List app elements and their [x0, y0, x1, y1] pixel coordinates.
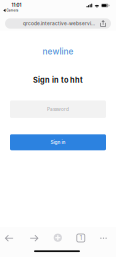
- button[interactable]: Back: [0, 230, 19, 246]
- staticText: Camera: [6, 9, 18, 12]
- staticText: qrcode.interactive-webservice.com: [23, 21, 97, 26]
- button[interactable]: New Tab: [48, 230, 68, 246]
- staticText: Sign in to hht: [33, 76, 83, 84]
- staticText: 11:01: [12, 2, 22, 8]
- button[interactable]: qrcode.interactive-webservice.com: [0, 17, 116, 29]
- button[interactable]: Forward: [24, 230, 44, 246]
- staticText: Sign in: [50, 139, 65, 145]
- staticText: newline: [42, 46, 73, 56]
- staticText: 1: [80, 235, 82, 241]
- button[interactable]: More: [93, 230, 113, 246]
- button[interactable]: Tabs: [71, 230, 91, 246]
- staticText: Password: [47, 106, 69, 112]
- button[interactable]: Sign in: [0, 134, 116, 150]
